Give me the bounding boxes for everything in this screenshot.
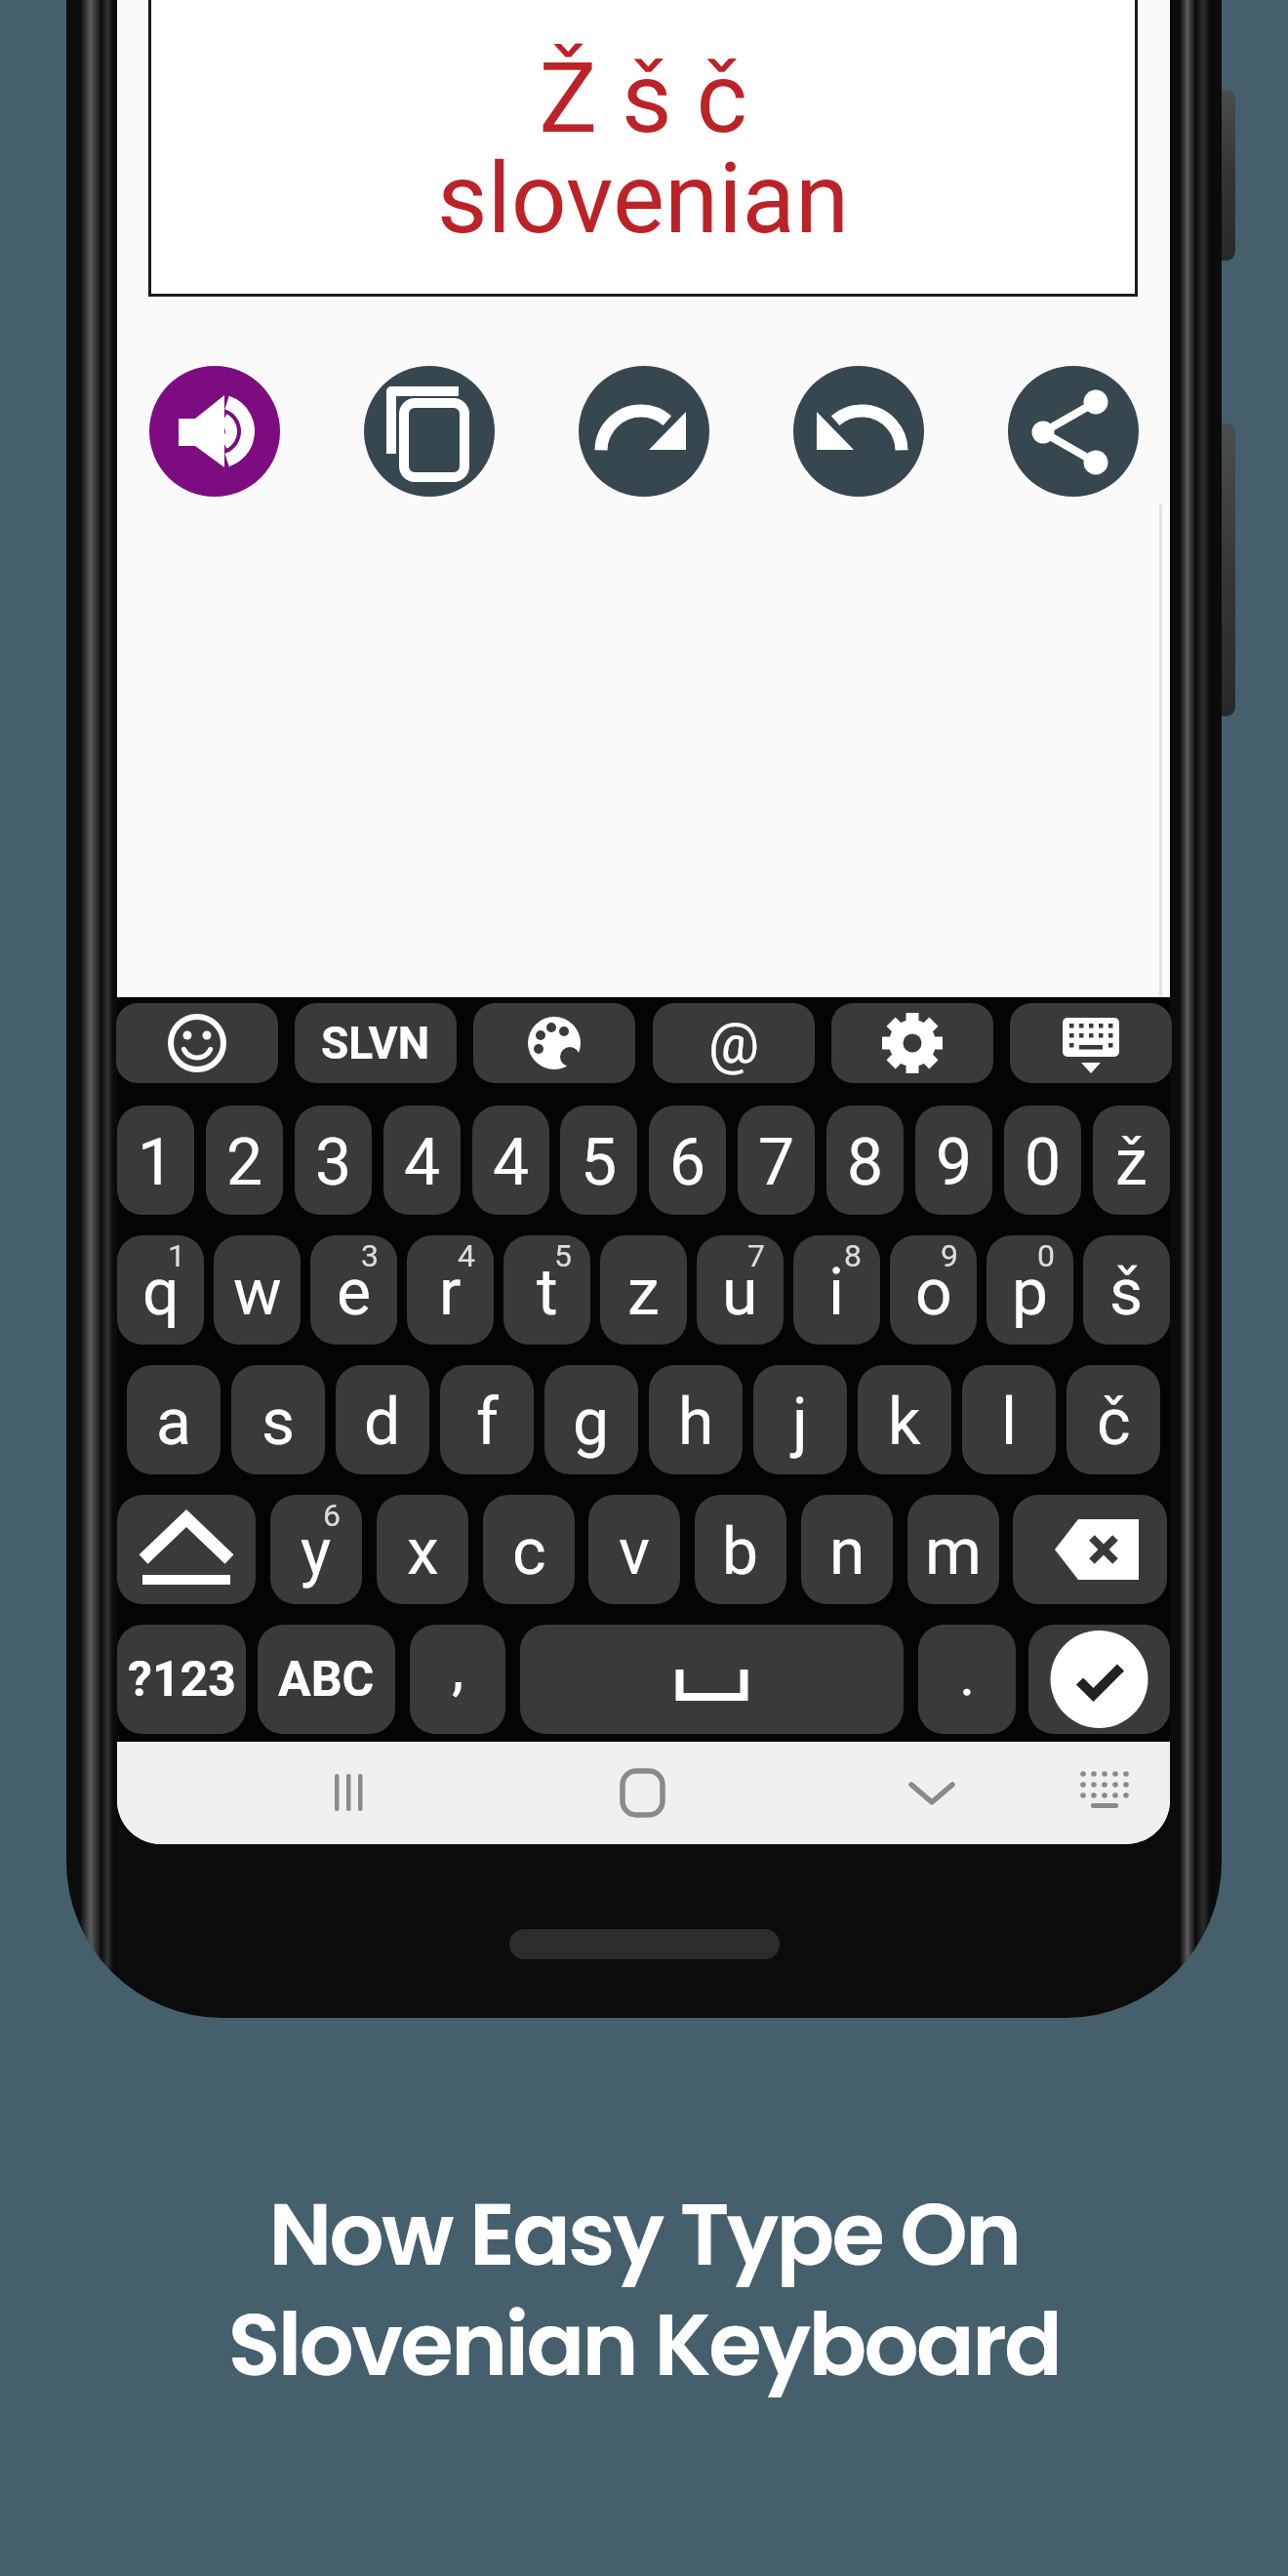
staticText: @: [708, 1010, 760, 1076]
button[interactable]: [831, 1003, 993, 1083]
staticText: a: [156, 1385, 191, 1460]
staticText: ABC: [278, 1651, 375, 1709]
staticText: 6: [669, 1125, 706, 1200]
button[interactable]: 4: [472, 1106, 549, 1215]
staticText: .: [959, 1638, 976, 1710]
staticText: e: [337, 1255, 371, 1330]
staticText: 4: [493, 1125, 530, 1200]
button[interactable]: [473, 1003, 635, 1083]
staticText: r: [439, 1255, 462, 1330]
button[interactable]: ?123: [117, 1625, 246, 1734]
staticText: 0: [1037, 1237, 1055, 1274]
button[interactable]: [117, 1495, 256, 1604]
button[interactable]: [793, 366, 924, 497]
staticText: h: [678, 1385, 714, 1460]
button[interactable]: 6: [649, 1106, 726, 1215]
staticText: 8: [847, 1125, 884, 1200]
button[interactable]: f: [440, 1365, 534, 1474]
button[interactable]: ,: [410, 1625, 505, 1734]
button[interactable]: 8: [826, 1106, 904, 1215]
button[interactable]: 4: [383, 1106, 461, 1215]
button[interactable]: g: [544, 1365, 638, 1474]
button[interactable]: [364, 366, 495, 497]
button[interactable]: o: [890, 1235, 977, 1345]
button[interactable]: [1028, 1625, 1170, 1734]
staticText: ?123: [128, 1651, 236, 1709]
button[interactable]: v: [588, 1495, 680, 1604]
staticText: ž: [1115, 1125, 1147, 1200]
button[interactable]: r: [407, 1235, 494, 1345]
button[interactable]: k: [858, 1365, 951, 1474]
button[interactable]: d: [336, 1365, 429, 1474]
staticText: 1: [138, 1125, 175, 1200]
button[interactable]: [116, 1003, 278, 1083]
button[interactable]: 7: [738, 1106, 815, 1215]
button[interactable]: [1008, 366, 1139, 497]
button[interactable]: i: [793, 1235, 880, 1345]
button[interactable]: ž: [1093, 1106, 1170, 1215]
button[interactable]: š: [1083, 1235, 1170, 1345]
button[interactable]: n: [801, 1495, 893, 1604]
button[interactable]: a: [127, 1365, 221, 1474]
staticText: u: [722, 1255, 758, 1330]
button[interactable]: 3: [295, 1106, 372, 1215]
staticText: g: [573, 1385, 610, 1460]
button[interactable]: h: [649, 1365, 743, 1474]
button[interactable]: 9: [915, 1106, 992, 1215]
button[interactable]: w: [214, 1235, 301, 1345]
button[interactable]: 2: [206, 1106, 283, 1215]
button[interactable]: 5: [560, 1106, 637, 1215]
button[interactable]: [579, 366, 709, 497]
button[interactable]: m: [907, 1495, 999, 1604]
button[interactable]: p: [986, 1235, 1073, 1345]
button[interactable]: č: [1067, 1365, 1160, 1474]
button[interactable]: x: [377, 1495, 468, 1604]
staticText: 4: [458, 1237, 475, 1274]
button[interactable]: l: [962, 1365, 1056, 1474]
button[interactable]: @: [653, 1003, 815, 1083]
staticText: 5: [554, 1237, 572, 1274]
staticText: k: [888, 1385, 921, 1460]
staticText: 0: [1025, 1125, 1062, 1200]
staticText: 8: [844, 1237, 862, 1274]
button[interactable]: j: [753, 1365, 847, 1474]
staticText: slovenian: [148, 141, 1138, 268]
staticText: 1: [168, 1237, 185, 1274]
button[interactable]: [995, 1742, 1170, 1844]
staticText: j: [792, 1385, 808, 1460]
staticText: 4: [404, 1125, 441, 1200]
button[interactable]: q: [117, 1235, 204, 1345]
staticText: i: [828, 1255, 845, 1330]
staticText: o: [915, 1255, 952, 1330]
button[interactable]: c: [483, 1495, 575, 1604]
button[interactable]: 0: [1004, 1106, 1081, 1215]
button[interactable]: y: [270, 1495, 362, 1604]
staticText: š: [1109, 1255, 1144, 1330]
button[interactable]: .: [918, 1625, 1016, 1734]
staticText: d: [364, 1385, 401, 1460]
button[interactable]: ABC: [258, 1625, 395, 1734]
button[interactable]: 1: [117, 1106, 194, 1215]
button[interactable]: b: [695, 1495, 786, 1604]
staticText: y: [301, 1514, 332, 1590]
button[interactable]: SLVN: [295, 1003, 457, 1083]
button[interactable]: [1013, 1495, 1167, 1604]
button[interactable]: s: [231, 1365, 325, 1474]
button[interactable]: [149, 366, 280, 497]
staticText: p: [1012, 1255, 1049, 1330]
button[interactable]: [1010, 1003, 1172, 1083]
staticText: 3: [315, 1125, 352, 1200]
button[interactable]: z: [600, 1235, 687, 1345]
button[interactable]: e: [310, 1235, 397, 1345]
button[interactable]: [520, 1625, 904, 1734]
staticText: Slovenian Keyboard: [0, 2285, 1288, 2412]
staticText: v: [619, 1514, 650, 1590]
button[interactable]: u: [697, 1235, 784, 1345]
staticText: 7: [747, 1237, 765, 1274]
staticText: 9: [936, 1125, 973, 1200]
staticText: 9: [941, 1237, 958, 1274]
staticText: b: [722, 1514, 759, 1590]
button[interactable]: t: [503, 1235, 590, 1345]
staticText: m: [925, 1514, 982, 1590]
